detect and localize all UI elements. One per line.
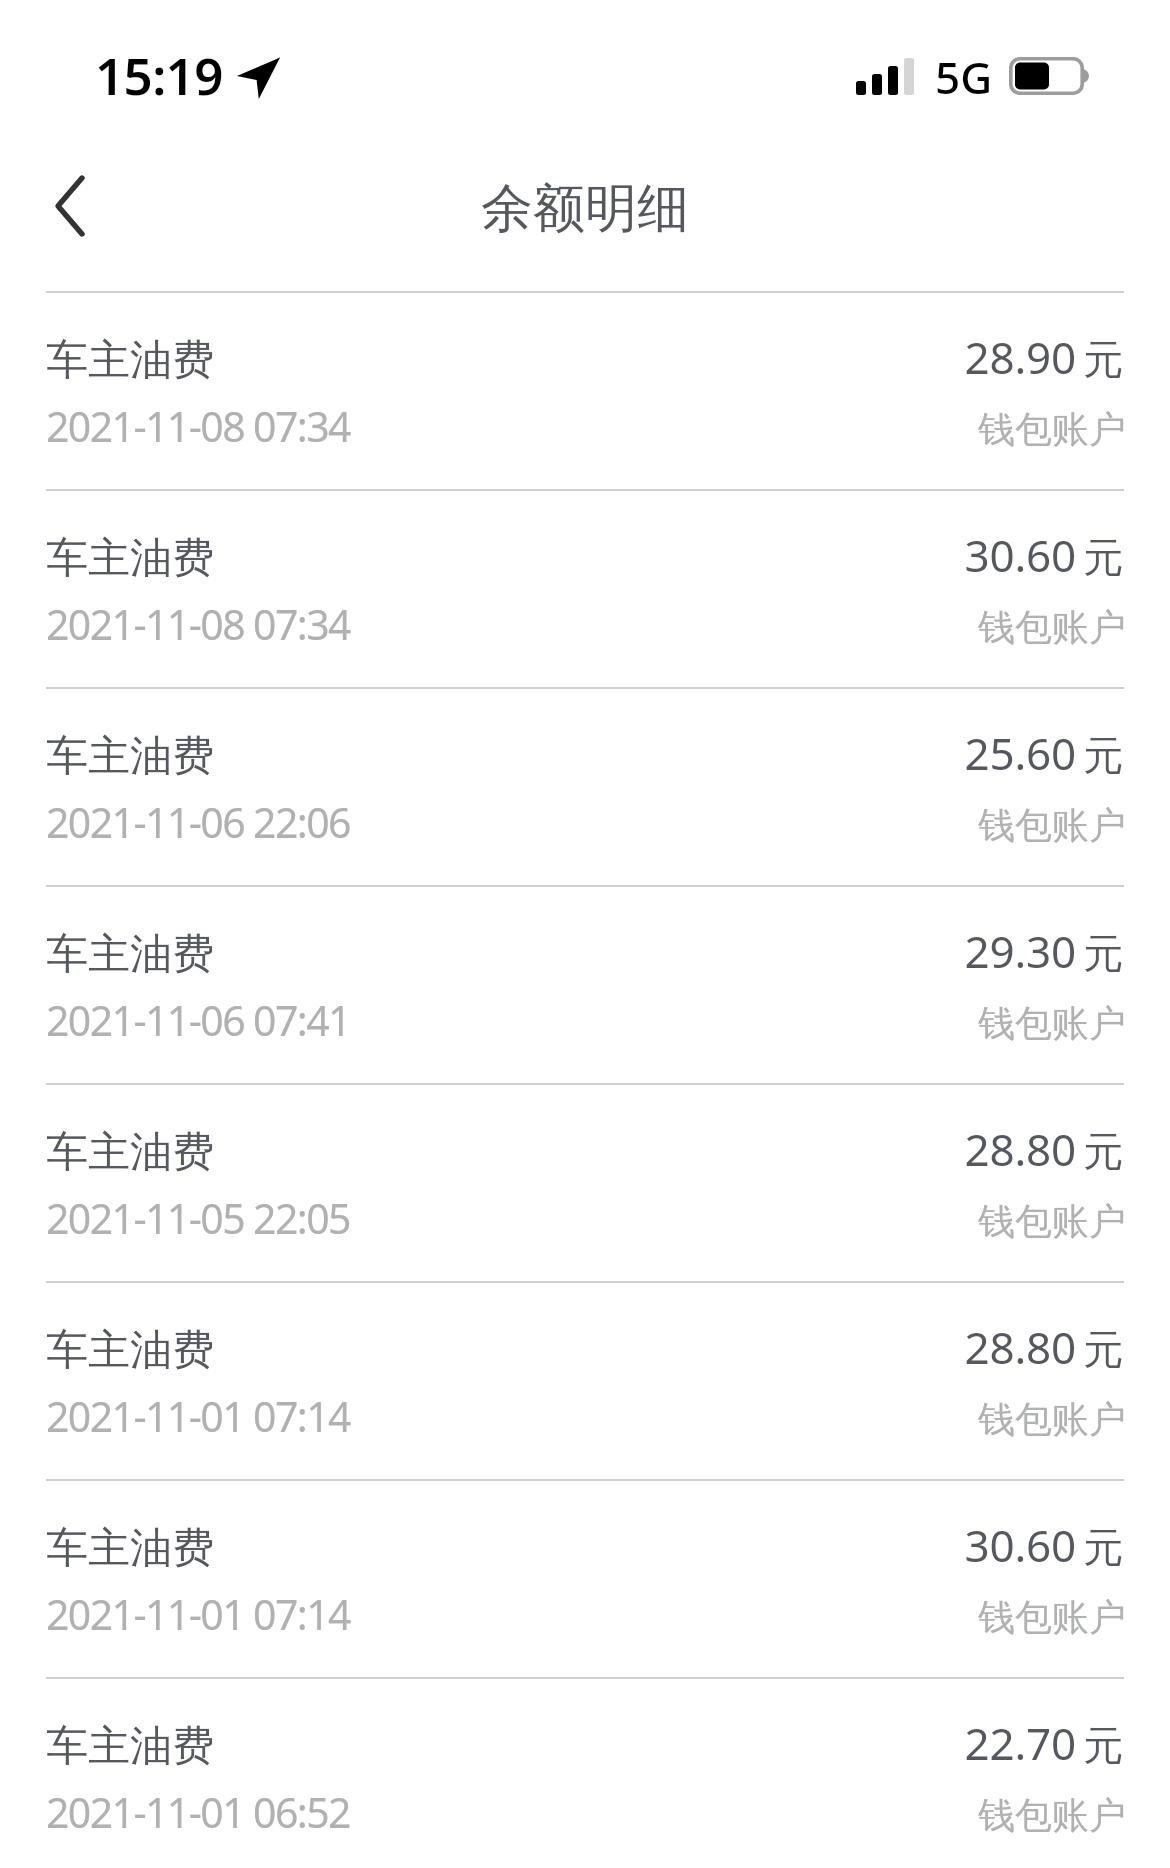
staticText: 2021-11-06 22:06 — [46, 794, 350, 850]
staticText: 钱包账户 — [0, 1594, 1126, 1641]
staticText: 余额明细 — [0, 176, 1170, 242]
button[interactable]: 车主油费 — [0, 1481, 1170, 1677]
button[interactable]: 车主油费 — [0, 1679, 1170, 1868]
button[interactable]: 车主油费 — [0, 491, 1170, 687]
staticText: 车主油费 — [46, 1324, 214, 1377]
staticText: 22.70 — [0, 1713, 1076, 1773]
staticText: 车主油费 — [46, 730, 214, 783]
staticText: 30.60 — [0, 1515, 1076, 1575]
other: Battery — [1009, 57, 1093, 96]
staticText: 28.80 — [0, 1119, 1076, 1179]
staticText: 车主油费 — [46, 532, 214, 585]
staticText: 钱包账户 — [0, 1198, 1126, 1245]
staticText: 钱包账户 — [0, 604, 1126, 651]
staticText: 5G — [935, 47, 993, 107]
staticText: 元 — [0, 730, 1123, 780]
staticText: 钱包账户 — [0, 1000, 1126, 1047]
staticText: 15:19 — [95, 40, 223, 109]
staticText: 车主油费 — [46, 928, 214, 981]
staticText: 元 — [0, 532, 1123, 582]
staticText: 车主油费 — [46, 1522, 214, 1575]
button[interactable]: 车主油费 — [0, 689, 1170, 885]
staticText: 车主油费 — [46, 1126, 214, 1179]
button[interactable]: Back — [15, 151, 125, 261]
staticText: 元 — [0, 1324, 1123, 1374]
staticText: 2021-11-08 07:34 — [46, 398, 350, 454]
staticText: 钱包账户 — [0, 406, 1126, 453]
staticText: 2021-11-01 07:14 — [46, 1586, 350, 1642]
other: Cellular signal — [856, 58, 914, 95]
staticText: 钱包账户 — [0, 802, 1126, 849]
other: Location active — [239, 58, 280, 97]
staticText: 29.30 — [0, 921, 1076, 981]
staticText: 2021-11-08 07:34 — [46, 596, 350, 652]
staticText: 元 — [0, 1522, 1123, 1572]
staticText: 元 — [0, 1720, 1123, 1770]
staticText: 28.90 — [0, 327, 1076, 387]
staticText: 车主油费 — [46, 334, 214, 387]
staticText: 2021-11-06 07:41 — [46, 992, 350, 1048]
staticText: 元 — [0, 1126, 1123, 1176]
staticText: 元 — [0, 928, 1123, 978]
staticText: 钱包账户 — [0, 1792, 1126, 1839]
button[interactable]: 车主油费 — [0, 1283, 1170, 1479]
staticText: 2021-11-01 07:14 — [46, 1388, 350, 1444]
staticText: 28.80 — [0, 1317, 1076, 1377]
staticText: 钱包账户 — [0, 1396, 1126, 1443]
staticText: 2021-11-05 22:05 — [46, 1190, 350, 1246]
button[interactable]: 车主油费 — [0, 1085, 1170, 1281]
staticText: 30.60 — [0, 525, 1076, 585]
staticText: 25.60 — [0, 723, 1076, 783]
button[interactable]: 车主油费 — [0, 887, 1170, 1083]
staticText: 2021-11-01 06:52 — [46, 1784, 350, 1840]
staticText: 元 — [0, 334, 1123, 384]
button[interactable]: 车主油费 — [0, 293, 1170, 489]
staticText: 车主油费 — [46, 1720, 214, 1773]
